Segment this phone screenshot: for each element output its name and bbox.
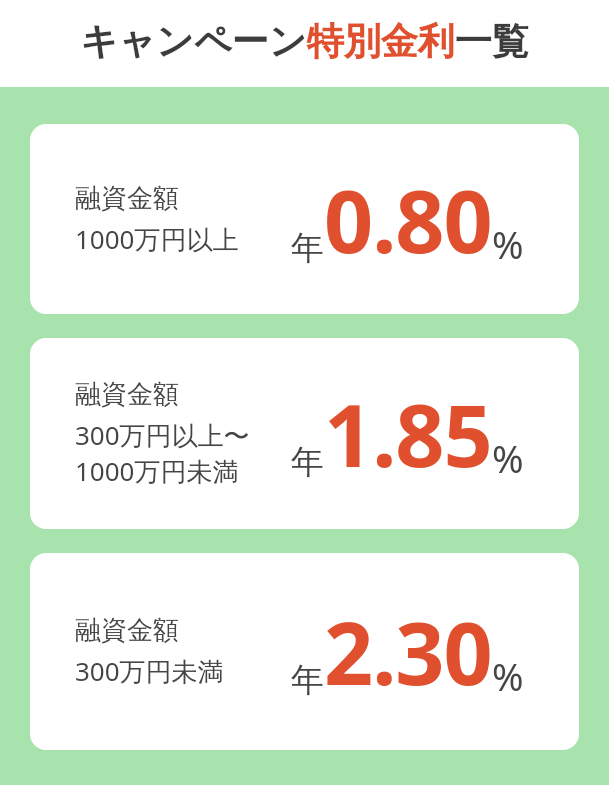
button[interactable]: 融資金額 bbox=[30, 338, 579, 529]
staticText: 年 bbox=[291, 441, 324, 483]
staticText: 融資金額 bbox=[75, 614, 179, 647]
staticText: 300万円以上〜 bbox=[75, 417, 250, 453]
staticText: 年 bbox=[291, 227, 324, 269]
staticText: 年 bbox=[291, 659, 324, 701]
staticText: % bbox=[492, 218, 524, 270]
staticText: 0.80 bbox=[324, 161, 492, 278]
staticText: 1000万円以上 bbox=[75, 221, 239, 257]
button[interactable]: 融資金額 bbox=[30, 124, 579, 314]
staticText: 300万円未満 bbox=[75, 653, 224, 689]
staticText: 2.30 bbox=[324, 593, 492, 710]
staticText: 融資金額 bbox=[75, 182, 179, 215]
staticText: 融資金額 bbox=[75, 378, 179, 411]
staticText: 1000万円未満 bbox=[75, 453, 239, 489]
staticText: % bbox=[492, 650, 524, 702]
button[interactable]: 融資金額 bbox=[30, 553, 579, 750]
staticText: キャンペーン特別金利一覧 bbox=[80, 18, 529, 65]
staticText: 1.85 bbox=[324, 375, 492, 492]
staticText: % bbox=[492, 432, 524, 484]
